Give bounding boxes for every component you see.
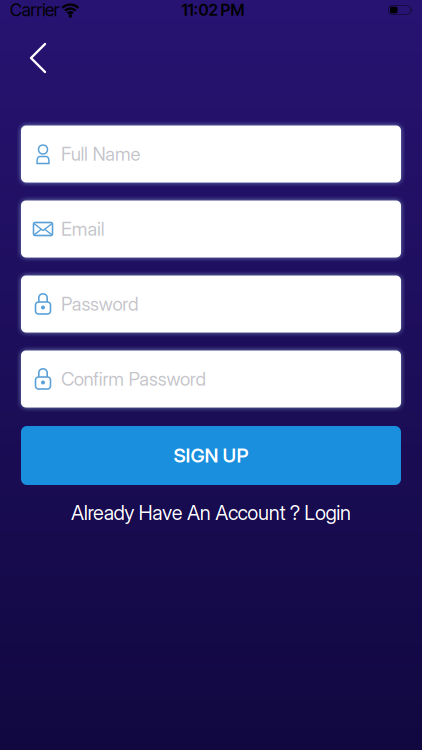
staticText: SIGN UP [173,444,248,467]
button[interactable]: Full Name [21,125,401,182]
staticText: Carrier [10,0,60,20]
button[interactable] [0,20,45,72]
staticText: Email [61,218,105,240]
button[interactable]: SIGN UP [21,426,401,485]
button[interactable]: Email [21,200,401,257]
staticText: Already Have An Account ? Login [71,500,351,525]
button[interactable]: Confirm Password [21,350,401,407]
staticText: Full Name [61,143,141,165]
staticText: Password [61,293,139,315]
staticText: 11:02 PM [181,0,244,20]
button[interactable]: Already Have An Account ? Login [71,500,351,525]
button[interactable]: Password [21,275,401,332]
staticText: Confirm Password [61,368,206,390]
